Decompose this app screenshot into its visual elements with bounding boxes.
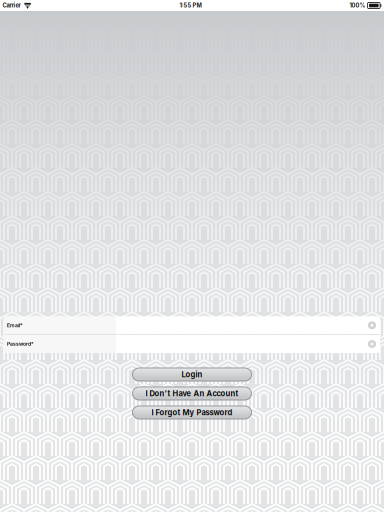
staticText: 1:55 PM	[180, 2, 202, 9]
staticText: Password*	[7, 341, 34, 347]
staticText: I Don't Have An Account	[145, 389, 238, 398]
staticText: 100%	[349, 2, 365, 9]
staticText: I Forgot My Password	[151, 408, 232, 417]
button[interactable]: Clear text	[366, 319, 378, 331]
staticText: Login	[181, 370, 202, 379]
button[interactable]: Login	[132, 368, 251, 381]
staticText: Email*	[7, 322, 23, 328]
button[interactable]: I Don't Have An Account	[132, 387, 251, 400]
staticText: Carrier	[2, 2, 20, 9]
button[interactable]: I Forgot My Password	[132, 406, 251, 419]
button[interactable]: Clear text	[366, 338, 378, 350]
